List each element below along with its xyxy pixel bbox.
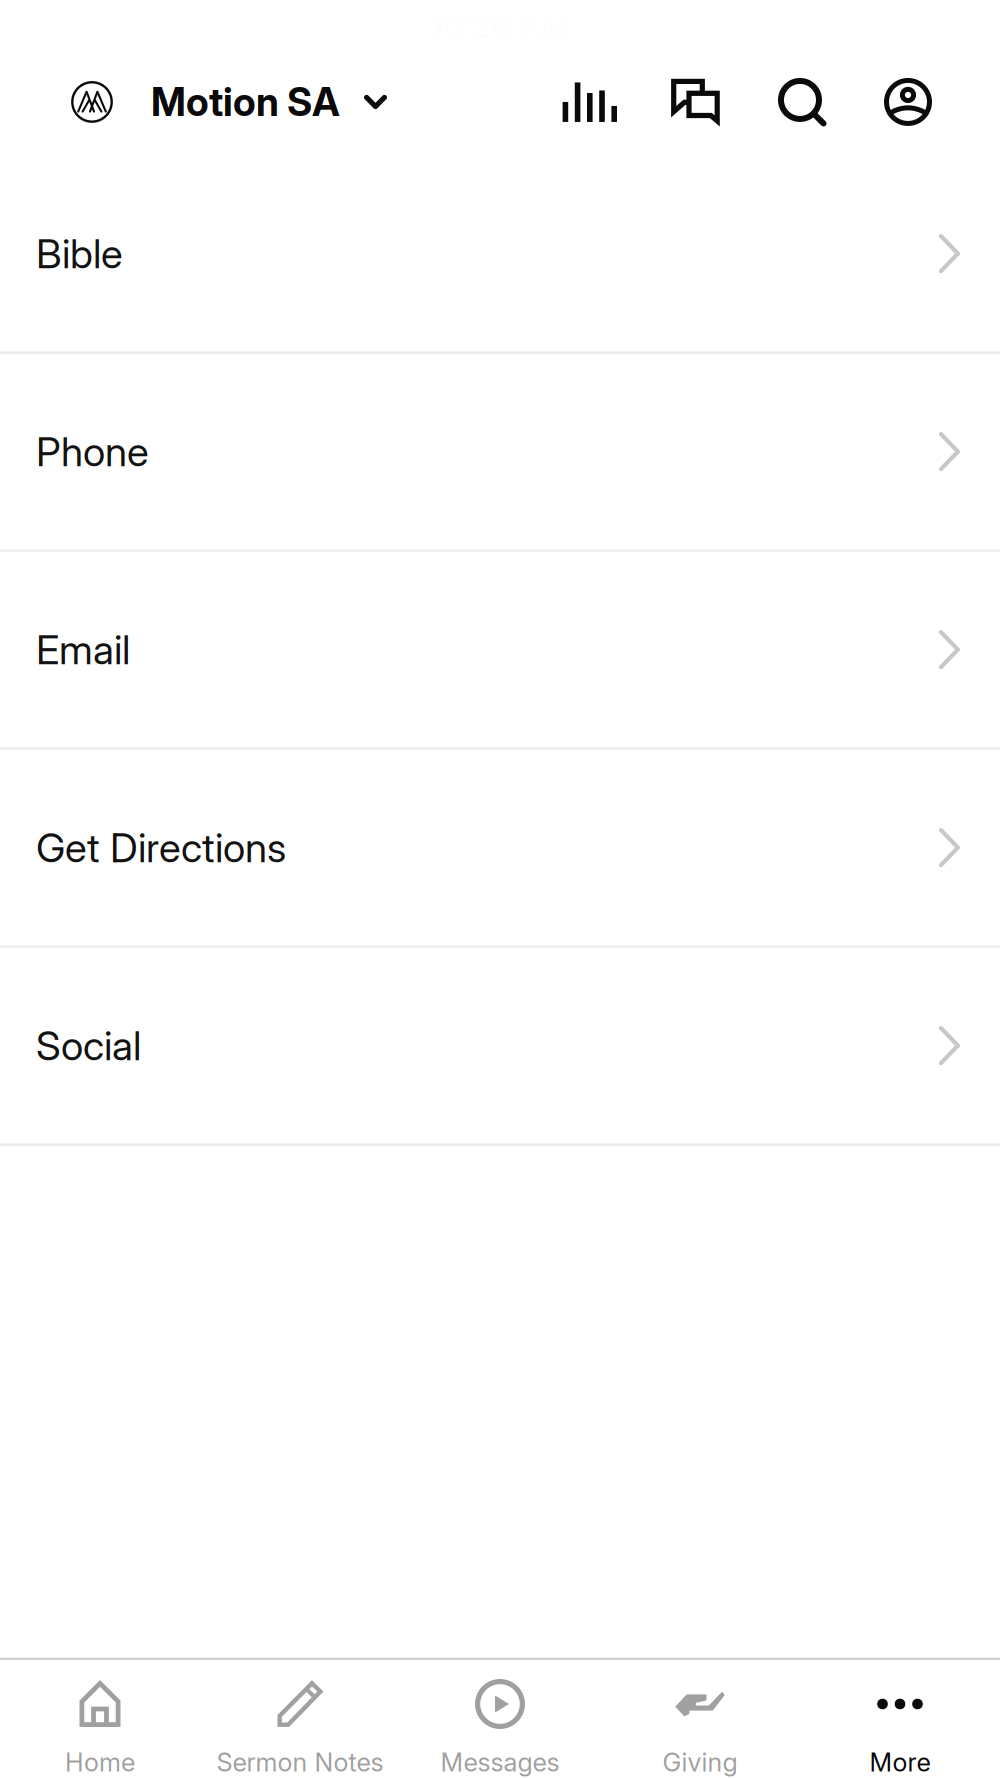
button[interactable]: Phone [0,354,1000,549]
staticText: Email [36,625,130,674]
staticText: Home [65,1747,135,1778]
button[interactable]: Email [0,552,1000,747]
button[interactable]: Home [0,1660,200,1778]
button[interactable]: Audio [563,81,617,123]
staticText: Social [36,1021,141,1070]
staticText: More [869,1747,930,1778]
button[interactable]: More [800,1660,1000,1778]
staticText: Bible [36,229,123,278]
button[interactable]: Get Directions [0,750,1000,945]
button[interactable]: Giving [600,1660,800,1778]
button[interactable]: Bible [0,156,1000,351]
button[interactable]: Account [884,78,932,126]
staticText: Phone [36,427,149,476]
staticText: Giving [662,1747,737,1778]
button[interactable]: Social [0,948,1000,1143]
button[interactable]: Search [778,78,826,126]
button[interactable]: Chat [671,79,720,125]
button[interactable]: Messages [400,1660,600,1778]
button[interactable]: Sermon Notes [200,1660,400,1778]
staticText: Messages [440,1747,559,1778]
staticText: Get Directions [36,823,286,872]
staticText: Sermon Notes [216,1747,383,1778]
staticText: Motion SA [151,79,340,125]
button[interactable]: Motion SA [71,79,387,125]
